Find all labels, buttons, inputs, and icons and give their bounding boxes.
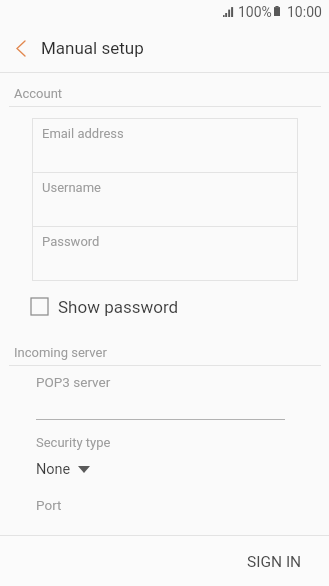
button[interactable]: Password <box>33 226 296 280</box>
staticText: Email address <box>42 126 124 141</box>
staticText: Port <box>36 497 62 513</box>
staticText: Show password <box>58 297 179 317</box>
button[interactable]: Show password <box>24 291 190 322</box>
staticText: SIGN IN <box>247 553 302 571</box>
button[interactable]: POP3 server <box>36 374 285 420</box>
button[interactable]: SIGN IN <box>223 540 329 582</box>
staticText: Manual setup <box>41 38 144 58</box>
staticText: None <box>36 461 71 478</box>
button[interactable]: Port <box>36 496 285 534</box>
button[interactable]: Username <box>33 172 296 226</box>
button[interactable]: Navigate up <box>1 28 41 68</box>
staticText: Username <box>42 180 101 195</box>
staticText: Security type <box>36 435 111 450</box>
staticText: Password <box>42 234 100 249</box>
staticText: POP3 server <box>36 374 111 390</box>
button[interactable]: Email address <box>33 118 296 172</box>
staticText: Incoming server <box>14 345 107 360</box>
button[interactable]: Security type <box>36 435 156 480</box>
staticText: Account <box>14 86 63 101</box>
staticText: 10:00 <box>287 4 322 20</box>
staticText: 100% <box>238 4 272 20</box>
